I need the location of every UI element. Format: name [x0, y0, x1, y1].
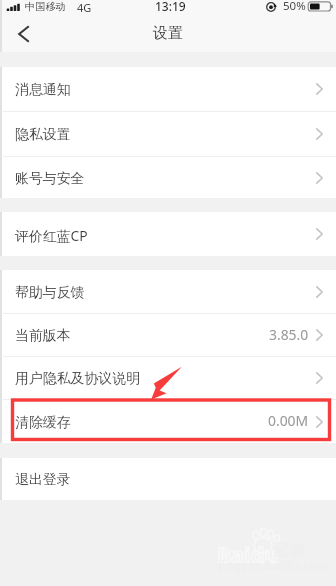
staticText: 3.85.0	[269, 325, 309, 344]
staticText: 4G	[77, 0, 92, 15]
staticText: 用户隐私及协议说明	[15, 370, 141, 388]
staticText: 消息通知	[15, 81, 71, 99]
staticText: 退出登录	[15, 471, 71, 489]
button[interactable]: 评价红蓝CP	[0, 212, 336, 256]
button[interactable]: 帮助与反馈	[0, 270, 336, 313]
staticText: 13:19	[155, 0, 186, 14]
button[interactable]: 账号与安全	[0, 157, 336, 198]
staticText: 隐私设置	[15, 126, 71, 144]
button[interactable]: 当前版本	[0, 314, 336, 356]
staticText: 0.00M	[268, 411, 309, 430]
staticText: 帮助与反馈	[15, 284, 85, 302]
staticText: 评价红蓝CP	[15, 226, 88, 245]
staticText: 账号与安全	[15, 170, 85, 188]
staticText: 当前版本	[15, 327, 71, 345]
button[interactable]: 清除缓存	[0, 400, 336, 443]
staticText: 50%	[283, 0, 306, 14]
button[interactable]: 消息通知	[0, 67, 336, 111]
button[interactable]: 隐私设置	[0, 112, 336, 156]
staticText: 设置	[153, 24, 183, 43]
button[interactable]: 用户隐私及协议说明	[0, 357, 336, 399]
staticText: 清除缓存	[15, 414, 71, 432]
button[interactable]: 退出登录	[0, 458, 336, 500]
staticText: 中国移动	[25, 0, 66, 13]
button[interactable]: Back	[0, 20, 47, 52]
